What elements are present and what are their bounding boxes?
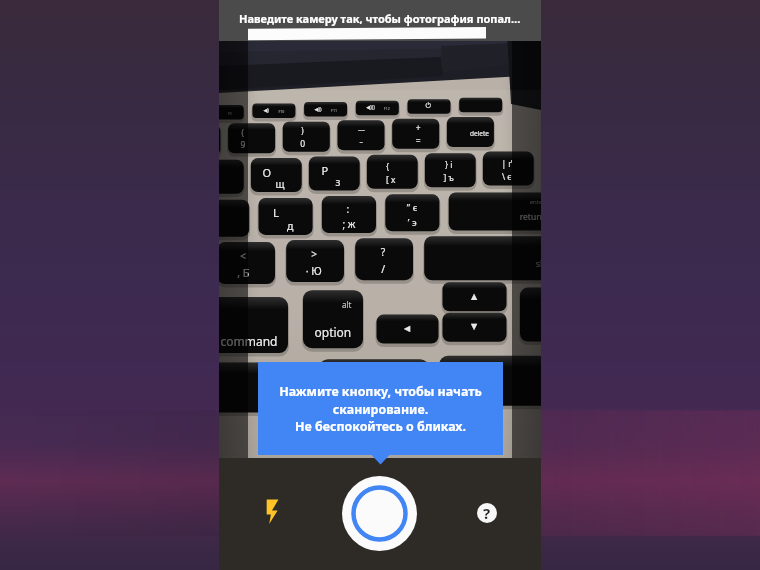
staticText: Наведите камеру так, чтобы фотография по… xyxy=(239,11,521,26)
button[interactable]: Наведите камеру так, чтобы фотография по… xyxy=(219,0,541,41)
button[interactable]: Scan xyxy=(342,476,417,551)
button[interactable]: Help xyxy=(467,493,507,533)
button[interactable]: Flash xyxy=(252,491,292,531)
button[interactable]: Нажмите кнопку, чтобы начать сканировани… xyxy=(258,362,503,455)
staticText: ? xyxy=(483,503,491,523)
staticText: Нажмите кнопку, чтобы начать сканировани… xyxy=(279,383,482,434)
